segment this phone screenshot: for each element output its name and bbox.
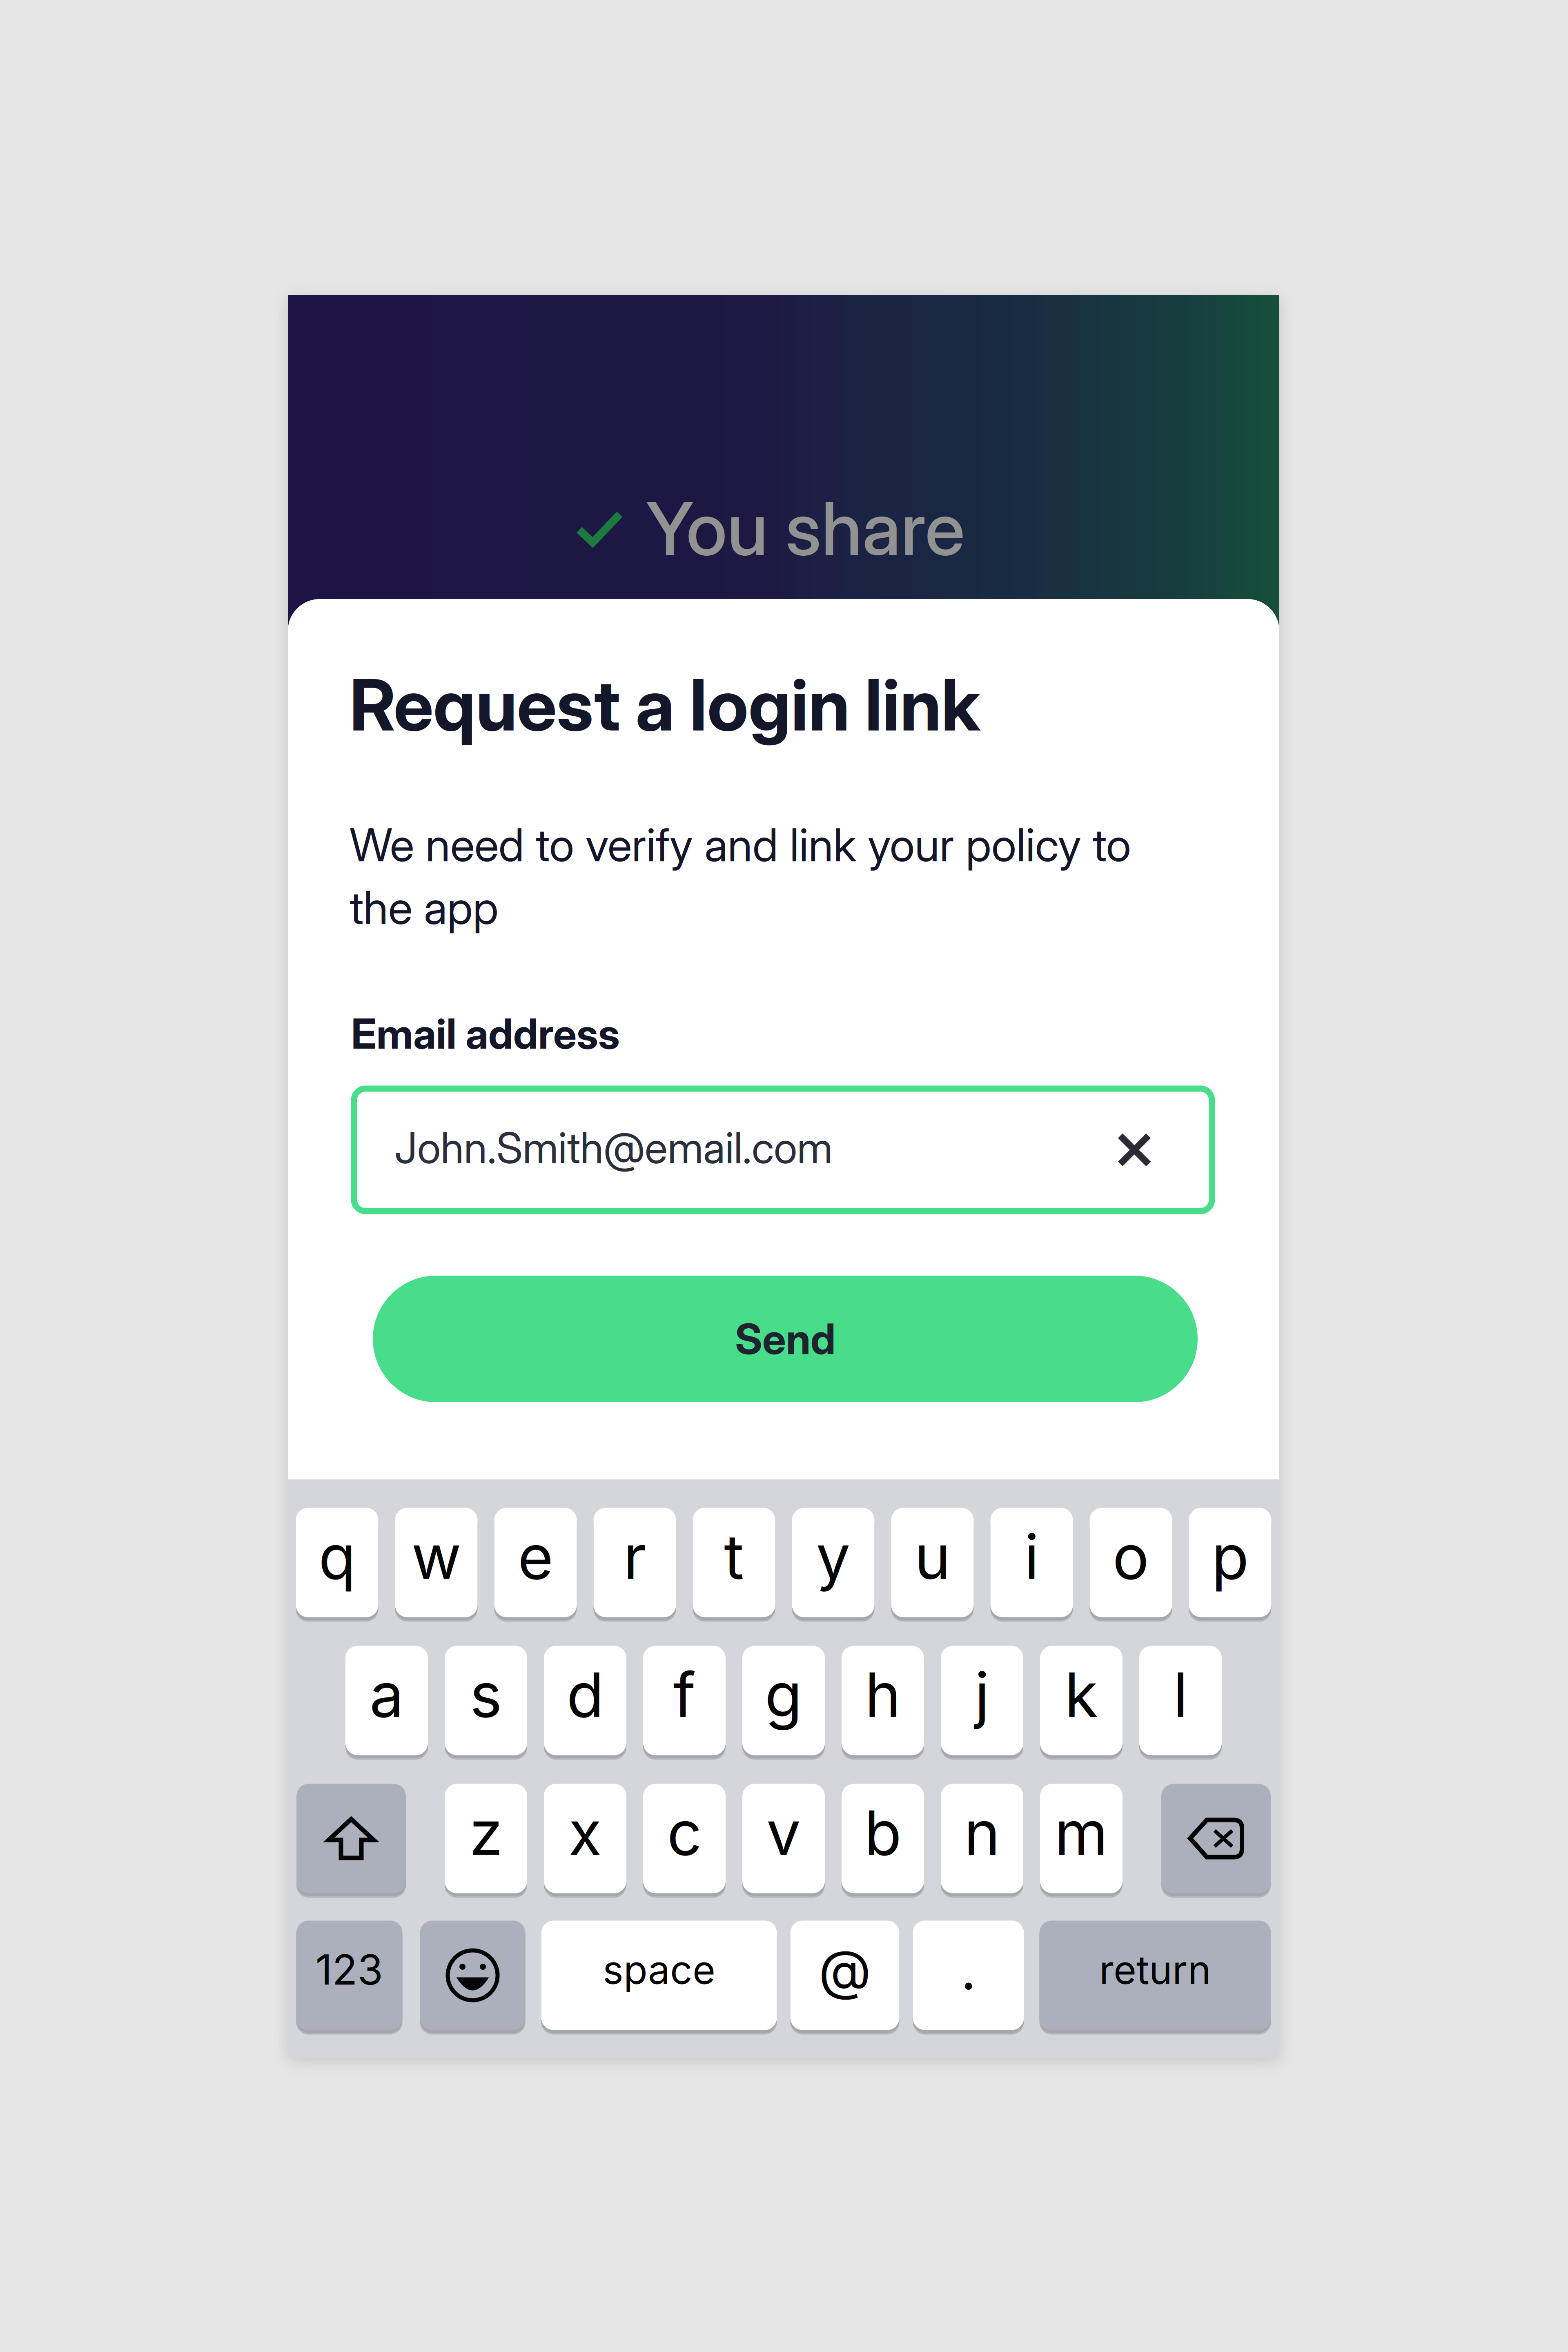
staticText: h: [865, 1658, 901, 1732]
button[interactable]: d: [544, 1644, 626, 1757]
button[interactable]: John.Smith@email.com: [354, 1089, 1212, 1211]
button[interactable]: Shift: [296, 1782, 406, 1895]
button[interactable]: y: [792, 1506, 874, 1619]
button[interactable]: u: [891, 1506, 974, 1619]
staticText: r: [623, 1520, 646, 1594]
button[interactable]: f: [643, 1644, 726, 1757]
button[interactable]: e: [494, 1506, 577, 1619]
button[interactable]: Clear email: [1098, 1089, 1212, 1211]
button[interactable]: w: [395, 1506, 478, 1619]
button[interactable]: g: [742, 1644, 825, 1757]
button[interactable]: @: [790, 1918, 899, 2032]
staticText: j: [975, 1658, 989, 1732]
button[interactable]: r: [594, 1506, 676, 1619]
staticText: y: [816, 1520, 850, 1594]
staticText: space: [603, 1946, 715, 1993]
staticText: l: [1173, 1658, 1188, 1732]
staticText: .: [961, 1937, 976, 2003]
button[interactable]: o: [1090, 1506, 1172, 1619]
button[interactable]: n: [941, 1782, 1023, 1895]
button[interactable]: v: [742, 1782, 825, 1895]
button[interactable]: t: [693, 1506, 775, 1619]
staticText: u: [914, 1520, 950, 1594]
button[interactable]: a: [345, 1644, 428, 1757]
button[interactable]: c: [643, 1782, 726, 1895]
staticText: p: [1212, 1520, 1249, 1594]
staticText: Email address: [351, 1009, 620, 1059]
staticText: b: [864, 1796, 901, 1870]
button[interactable]: z: [445, 1782, 527, 1895]
staticText: 123: [315, 1945, 383, 1995]
staticText: t: [724, 1520, 744, 1594]
staticText: a: [370, 1658, 404, 1732]
staticText: d: [567, 1658, 604, 1732]
staticText: z: [469, 1796, 503, 1870]
staticText: @: [819, 1937, 871, 2003]
staticText: You share: [646, 484, 965, 573]
button[interactable]: i: [990, 1506, 1073, 1619]
button[interactable]: Send: [373, 1276, 1198, 1402]
staticText: e: [518, 1520, 553, 1594]
button[interactable]: h: [842, 1644, 924, 1757]
staticText: i: [1024, 1520, 1039, 1594]
staticText: f: [673, 1658, 696, 1732]
staticText: We need to verify and link your policy t…: [350, 817, 1131, 935]
button[interactable]: Delete: [1161, 1782, 1271, 1895]
staticText: s: [470, 1658, 502, 1732]
button[interactable]: p: [1189, 1506, 1271, 1619]
staticText: m: [1055, 1796, 1108, 1870]
staticText: k: [1065, 1658, 1098, 1732]
button[interactable]: j: [941, 1644, 1023, 1757]
button[interactable]: s: [445, 1644, 527, 1757]
button[interactable]: space: [541, 1918, 777, 2032]
staticText: John.Smith@email.com: [394, 1122, 833, 1174]
button[interactable]: 123: [296, 1918, 402, 2032]
staticText: x: [568, 1796, 602, 1870]
button[interactable]: m: [1040, 1782, 1123, 1895]
button[interactable]: l: [1139, 1644, 1222, 1757]
staticText: Send: [735, 1314, 835, 1364]
staticText: c: [667, 1796, 702, 1870]
staticText: n: [964, 1796, 1000, 1870]
button[interactable]: Emoji keyboard: [420, 1918, 525, 2032]
button[interactable]: b: [842, 1782, 924, 1895]
staticText: q: [318, 1520, 356, 1594]
button[interactable]: q: [296, 1506, 378, 1619]
staticText: return: [1099, 1946, 1211, 1993]
staticText: o: [1113, 1520, 1149, 1594]
button[interactable]: return: [1039, 1918, 1271, 2032]
staticText: g: [765, 1658, 802, 1732]
button[interactable]: k: [1040, 1644, 1123, 1757]
button[interactable]: x: [544, 1782, 626, 1895]
staticText: w: [411, 1520, 461, 1594]
staticText: Request a login link: [350, 662, 980, 748]
button[interactable]: .: [913, 1918, 1024, 2032]
staticText: v: [766, 1796, 801, 1870]
